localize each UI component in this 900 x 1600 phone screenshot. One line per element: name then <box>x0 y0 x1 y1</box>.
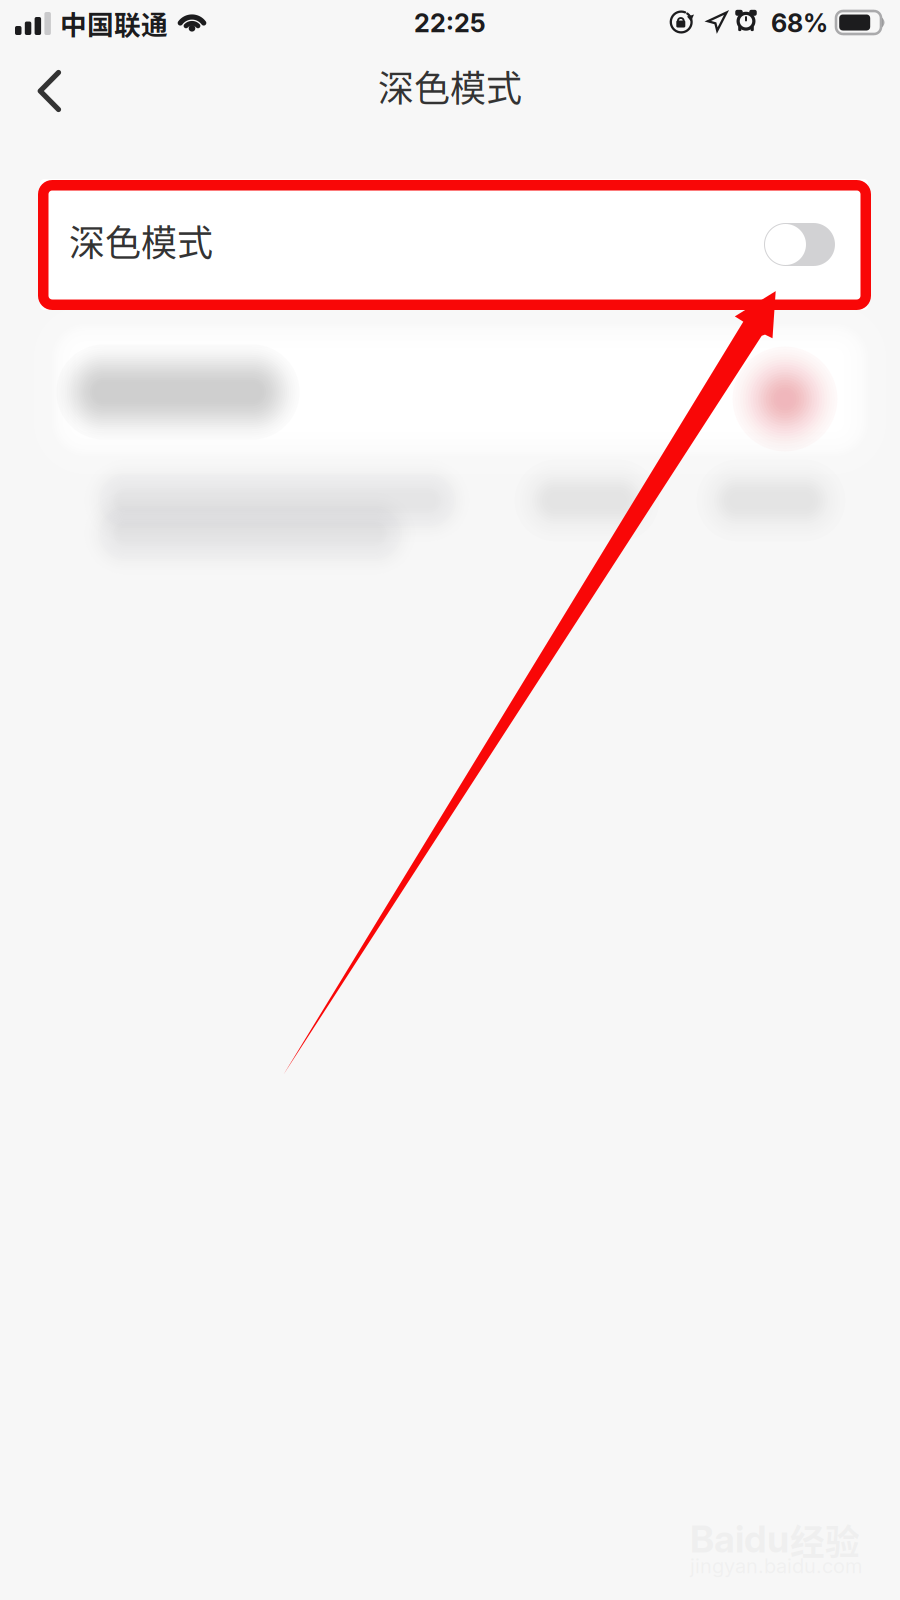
staticText: 深色模式 <box>378 60 522 112</box>
button[interactable]: 深色模式 <box>40 179 868 310</box>
staticText: 深色模式 <box>69 214 213 266</box>
staticText: 22:25 <box>414 8 486 38</box>
staticText: 中国联通 <box>60 4 168 42</box>
staticText: 68% <box>771 8 828 38</box>
staticText: 经验 <box>790 1515 860 1565</box>
button[interactable]: Back <box>12 54 86 128</box>
staticText: Baidu <box>690 1516 789 1562</box>
